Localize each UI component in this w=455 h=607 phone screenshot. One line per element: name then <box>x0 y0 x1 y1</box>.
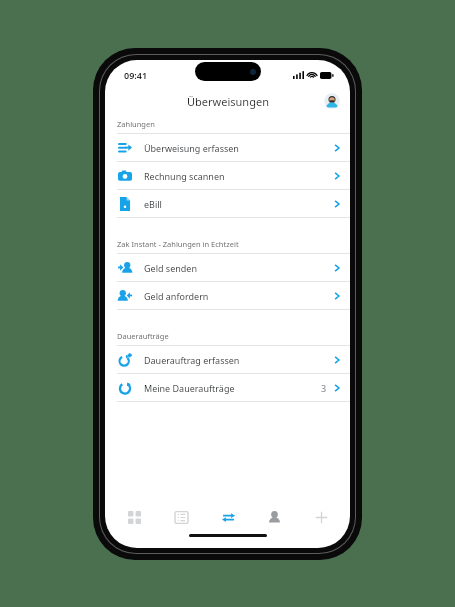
staticText: 09:41 <box>124 69 148 81</box>
button[interactable]: Profil <box>256 501 292 533</box>
staticText: 3 <box>321 382 327 394</box>
staticText: Meine Daueraufträge <box>144 382 321 394</box>
staticText: Dauerauftrag erfassen <box>144 354 334 366</box>
staticText: Rechnung scannen <box>144 170 334 182</box>
button[interactable]: Meine Daueraufträge <box>105 374 350 401</box>
staticText: Daueraufträge <box>117 331 169 341</box>
button[interactable]: Geld senden <box>105 254 350 281</box>
staticText: Geld senden <box>144 262 334 274</box>
staticText: Überweisungen <box>187 94 269 109</box>
staticText: Überweisung erfassen <box>144 142 334 154</box>
button[interactable]: Dashboard <box>116 501 152 533</box>
button[interactable]: Hinzufügen <box>303 501 339 533</box>
staticText: Geld anfordern <box>144 290 334 302</box>
staticText: Zahlungen <box>117 119 155 129</box>
button[interactable]: Überweisungen <box>210 501 246 533</box>
button[interactable]: Geld anfordern <box>105 282 350 309</box>
button[interactable]: Dauerauftrag erfassen <box>105 346 350 373</box>
button[interactable]: Rechnung scannen <box>105 162 350 189</box>
button[interactable]: Profil <box>324 93 340 109</box>
staticText: Zak Instant - Zahlungen in Echtzeit <box>117 239 239 249</box>
staticText: eBill <box>144 198 334 210</box>
button[interactable]: eBill <box>105 190 350 217</box>
button[interactable]: Liste <box>163 501 199 533</box>
button[interactable]: Überweisung erfassen <box>105 134 350 161</box>
